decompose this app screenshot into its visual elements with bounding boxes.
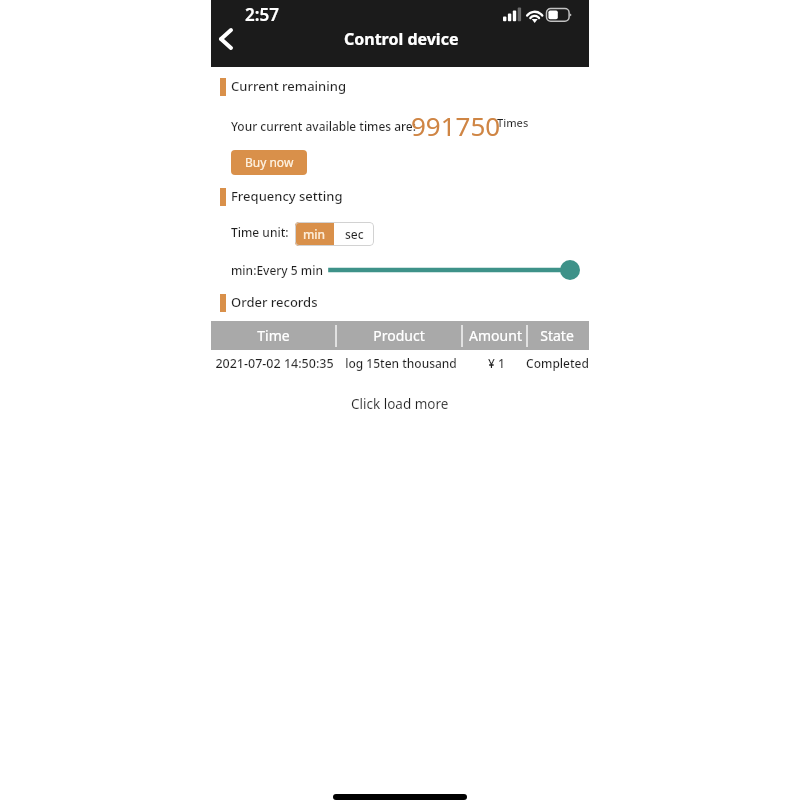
staticText: Time bbox=[257, 326, 290, 345]
staticText: 991750 bbox=[411, 108, 501, 143]
staticText: Frequency setting bbox=[231, 187, 343, 205]
staticText: Product bbox=[373, 326, 425, 345]
staticText: Completed bbox=[526, 355, 589, 371]
staticText: Time unit: bbox=[231, 224, 289, 240]
staticText: State bbox=[540, 326, 574, 345]
staticText: min bbox=[303, 226, 326, 242]
staticText: Your current available times are: bbox=[231, 118, 416, 134]
staticText: Amount bbox=[469, 326, 522, 345]
button[interactable]: Buy now bbox=[231, 150, 307, 175]
staticText: Times bbox=[497, 115, 529, 130]
staticText: 2021-07-02 14:50:35 bbox=[215, 355, 334, 371]
button[interactable]: Click load more bbox=[330, 392, 470, 416]
staticText: Control device bbox=[344, 28, 459, 50]
staticText: Buy now bbox=[245, 154, 294, 170]
staticText: log 15ten thousand bbox=[345, 355, 457, 371]
button[interactable]: Frequency slider bbox=[326, 258, 582, 282]
button[interactable]: 2021-07-02 14:50:35 bbox=[211, 352, 589, 375]
staticText: min:Every 5 min bbox=[231, 262, 323, 278]
staticText: Click load more bbox=[351, 395, 449, 413]
button[interactable]: sec bbox=[334, 222, 374, 246]
button[interactable]: Back bbox=[211, 20, 251, 58]
staticText: Current remaining bbox=[231, 77, 346, 95]
staticText: ¥ 1 bbox=[488, 355, 505, 371]
staticText: Order records bbox=[231, 293, 318, 311]
staticText: 2:57 bbox=[245, 3, 279, 26]
button[interactable]: min bbox=[295, 222, 334, 246]
staticText: sec bbox=[345, 226, 364, 242]
